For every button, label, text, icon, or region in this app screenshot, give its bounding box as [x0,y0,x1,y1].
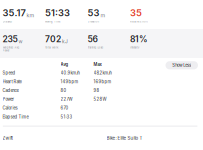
staticText: 51:33 [61,114,73,119]
staticText: kJ [62,38,68,44]
staticText: Training Load [88,46,104,49]
staticText: Relative Effort [130,20,148,23]
staticText: 56 [88,34,98,44]
staticText: 528W [94,97,107,102]
staticText: 35.17 [3,7,26,18]
staticText: Heart Rate [3,79,22,84]
staticText: Calories [3,106,18,111]
staticText: Avg [61,62,69,67]
staticText: Weighted Avg Power [3,46,20,52]
staticText: 670 [61,106,69,111]
staticText: 40.9km/h [61,70,80,75]
staticText: 81% [130,34,148,44]
staticText: Cadence [3,88,19,93]
staticText: 98 [94,88,100,93]
staticText: 169bpm [94,79,112,84]
staticText: 149bpm [61,79,79,84]
staticText: Bike: Elite Suito T [107,136,143,141]
staticText: 53 [88,7,100,18]
staticText: km [26,12,34,18]
button[interactable]: Show Less [165,61,198,69]
staticText: 80 [61,88,67,93]
staticText: 35 [130,7,142,18]
staticText: Zwift [3,136,13,141]
staticText: Moving Time [45,20,60,23]
staticText: 235 [3,34,18,44]
staticText: 702 [45,34,61,44]
staticText: Distance [3,20,12,23]
staticText: w [18,38,22,44]
staticText: Intensity [130,46,139,49]
staticText: 227W [61,97,73,102]
staticText: Elevation [88,20,99,23]
staticText: Max [94,62,102,67]
staticText: 48.2km/h [94,70,112,75]
staticText: 51:33 [45,7,70,18]
staticText: Power [3,97,15,102]
staticText: Speed [3,70,16,75]
staticText: Show Less [172,63,191,68]
staticText: Elapsed Time [3,114,29,119]
staticText: Total Work [45,46,58,49]
staticText: m [100,12,105,18]
